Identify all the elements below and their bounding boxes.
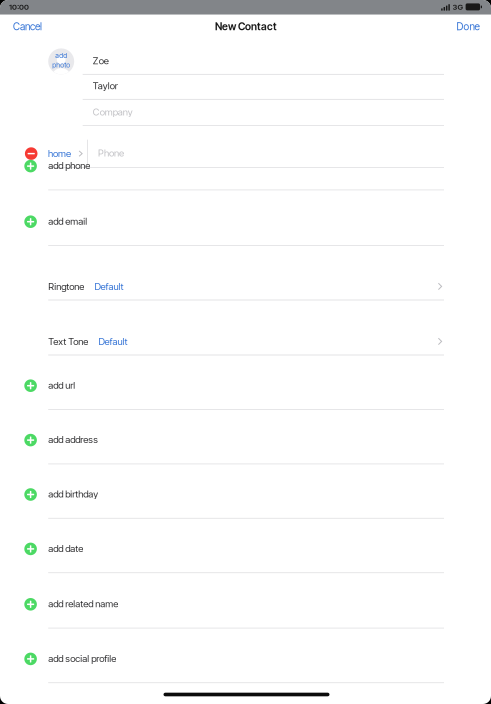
staticText: Taylor — [93, 80, 118, 92]
staticText: Cancel — [13, 20, 42, 33]
staticText: Zoe — [93, 55, 109, 67]
staticText: Phone — [98, 147, 124, 159]
button[interactable]: Cancel — [0, 15, 54, 37]
button[interactable]: home — [18, 138, 444, 168]
staticText: add phone — [48, 160, 90, 171]
staticText: add url — [48, 379, 75, 391]
staticText: Done — [456, 20, 479, 33]
staticText: add related name — [48, 598, 118, 610]
staticText: Company — [93, 106, 133, 118]
button[interactable]: add email — [18, 211, 444, 233]
button[interactable]: Text Tone — [18, 330, 444, 352]
button[interactable]: add date — [18, 538, 444, 560]
staticText: New Contact — [215, 20, 277, 33]
button[interactable]: Done — [443, 15, 491, 37]
staticText: add email — [48, 215, 87, 227]
staticText: home — [48, 148, 71, 159]
button[interactable]: add photo — [48, 48, 74, 74]
staticText: 10:00 — [9, 2, 29, 12]
staticText: Default — [99, 336, 128, 347]
staticText: Ringtone — [48, 281, 84, 292]
button[interactable]: Ringtone — [18, 275, 444, 297]
staticText: Default — [95, 281, 124, 292]
button[interactable]: add birthday — [18, 484, 444, 506]
button[interactable]: add related name — [18, 593, 444, 615]
staticText: add date — [48, 543, 83, 554]
button[interactable]: add url — [18, 375, 444, 397]
button[interactable]: add phone — [18, 155, 444, 177]
staticText: add social profile — [48, 653, 116, 664]
staticText: 3G — [452, 2, 463, 12]
staticText: add address — [48, 434, 98, 445]
button[interactable]: add address — [18, 429, 444, 451]
staticText: add birthday — [48, 488, 98, 500]
staticText: add — [55, 51, 67, 60]
button[interactable]: add social profile — [18, 648, 444, 670]
staticText: photo — [52, 61, 70, 69]
staticText: Text Tone — [48, 336, 88, 347]
